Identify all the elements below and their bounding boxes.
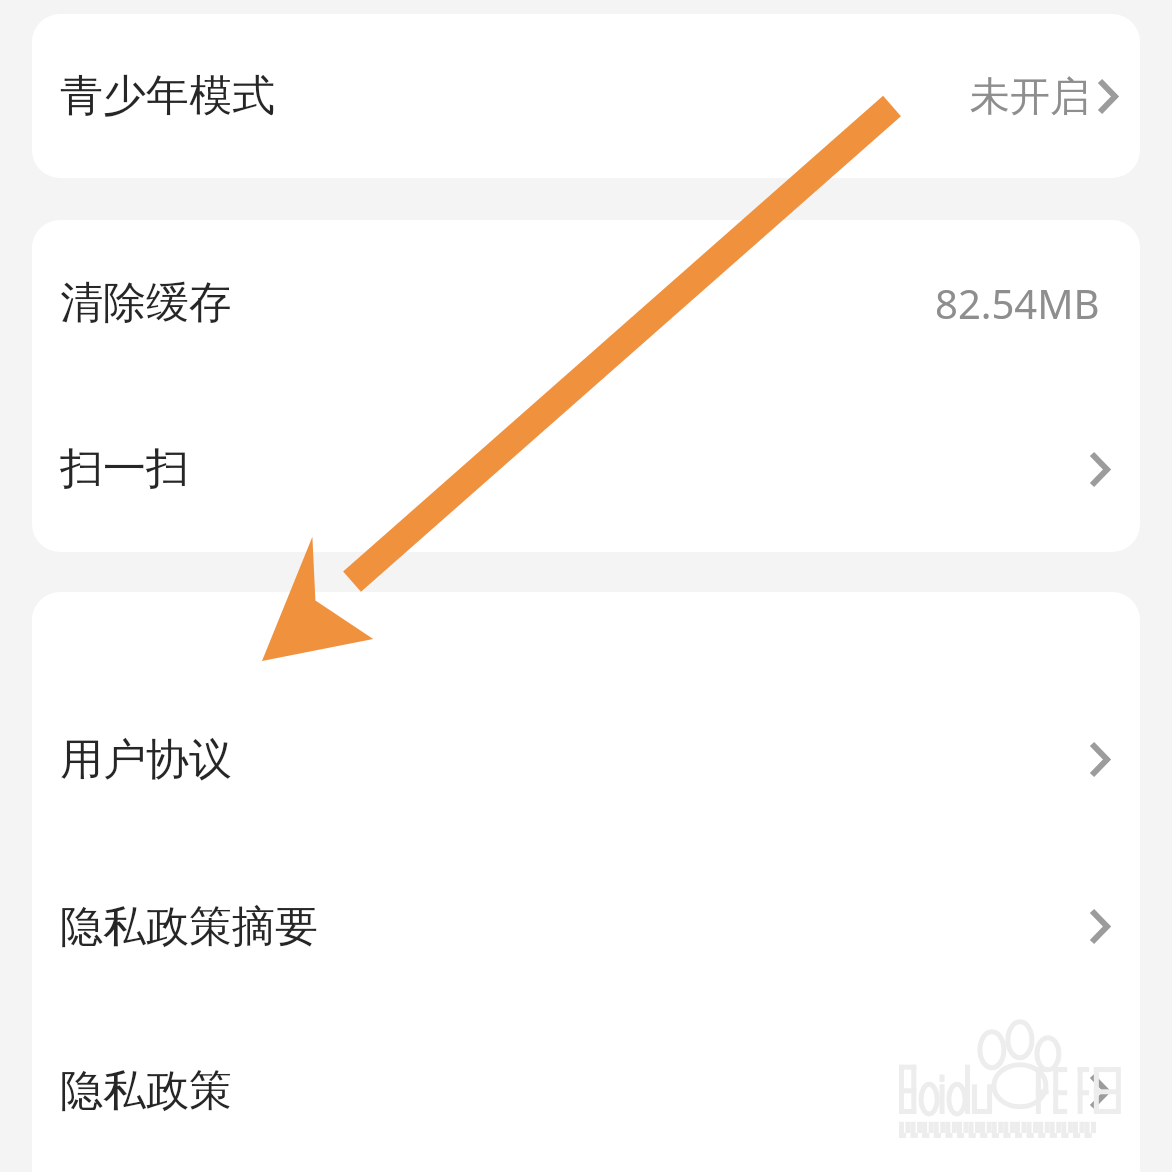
staticText: 隐私政策	[60, 1064, 232, 1118]
staticText: 隐私政策摘要	[60, 900, 318, 954]
button[interactable]: 隐私政策摘要	[32, 843, 1140, 1010]
staticText: 82.54MB	[935, 276, 1100, 330]
staticText: 清除缓存	[60, 276, 232, 330]
staticText: 用户协议	[60, 733, 232, 787]
staticText: 扫一扫	[60, 442, 189, 496]
button[interactable]: 扫一扫	[32, 386, 1140, 552]
staticText: 青少年模式	[60, 69, 275, 123]
button[interactable]: 清除缓存	[32, 220, 1140, 386]
staticText: 未开启	[970, 71, 1090, 121]
other: Annotation arrow	[0, 0, 1172, 1172]
button[interactable]: 青少年模式	[32, 14, 1140, 178]
button[interactable]: 隐私政策	[32, 1010, 1140, 1172]
button[interactable]: 用户协议	[32, 676, 1140, 843]
